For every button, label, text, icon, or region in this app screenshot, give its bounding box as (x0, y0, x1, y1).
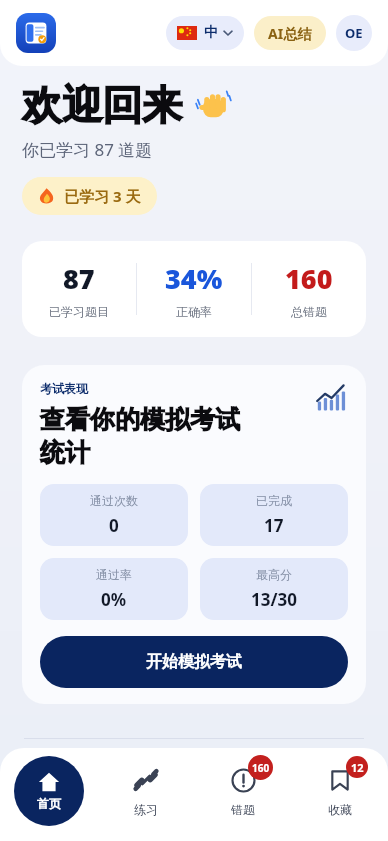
staticText: 你已学习 87 道题 (22, 138, 153, 161)
button[interactable]: Wrong questions (194, 756, 291, 841)
other: Wrong questions (229, 766, 257, 794)
button[interactable]: 已完成 (200, 484, 348, 546)
staticText: 查看你的模拟考试 (40, 404, 240, 435)
staticText: 已完成 (256, 493, 292, 508)
staticText: 87 (63, 260, 95, 297)
staticText: 总错题 (291, 304, 327, 319)
button[interactable]: 通过率 (40, 558, 188, 620)
button[interactable]: 已学习 3 天 (22, 177, 157, 215)
staticText: OE (345, 24, 363, 42)
staticText: 0 (109, 514, 119, 537)
button[interactable]: 87 (22, 241, 366, 337)
other: Favorites (326, 766, 354, 794)
staticText: 通过次数 (90, 493, 138, 508)
button[interactable]: 首页 (14, 756, 84, 826)
staticText: 正确率 (176, 304, 212, 319)
staticText: 12 (351, 760, 364, 775)
staticText: 考试表现 (40, 381, 88, 396)
staticText: 17 (264, 514, 284, 537)
staticText: 首页 (37, 796, 61, 811)
staticText: 通过率 (96, 567, 132, 582)
staticText: 错题 (231, 802, 255, 817)
staticText: 160 (285, 260, 333, 297)
button[interactable]: Practice (97, 756, 194, 841)
staticText: 已学习 3 天 (64, 186, 141, 206)
staticText: 34% (165, 260, 223, 297)
staticText: 统计 (40, 437, 90, 468)
button[interactable]: AI总结 (254, 16, 326, 50)
button[interactable]: 通过次数 (40, 484, 188, 546)
other: Practice (132, 766, 160, 794)
staticText: 已学习题目 (49, 304, 109, 319)
staticText: 最高分 (256, 567, 292, 582)
staticText: 13/30 (251, 588, 297, 611)
staticText: 收藏 (328, 802, 352, 817)
button[interactable]: App logo (16, 13, 56, 53)
button[interactable]: Favorites (291, 756, 388, 841)
button[interactable]: 中 (166, 16, 244, 50)
staticText: 160 (252, 761, 270, 775)
button[interactable]: Statistics (314, 381, 348, 415)
button[interactable]: 最高分 (200, 558, 348, 620)
button[interactable]: 开始模拟考试 (40, 636, 348, 688)
staticText: AI总结 (268, 24, 312, 43)
button[interactable]: Account (336, 15, 372, 51)
staticText: 中 (204, 24, 218, 42)
staticText: 练习 (134, 802, 158, 817)
staticText: 0% (101, 588, 127, 611)
staticText: 欢迎回来 (22, 80, 182, 130)
staticText: 开始模拟考试 (146, 652, 242, 672)
